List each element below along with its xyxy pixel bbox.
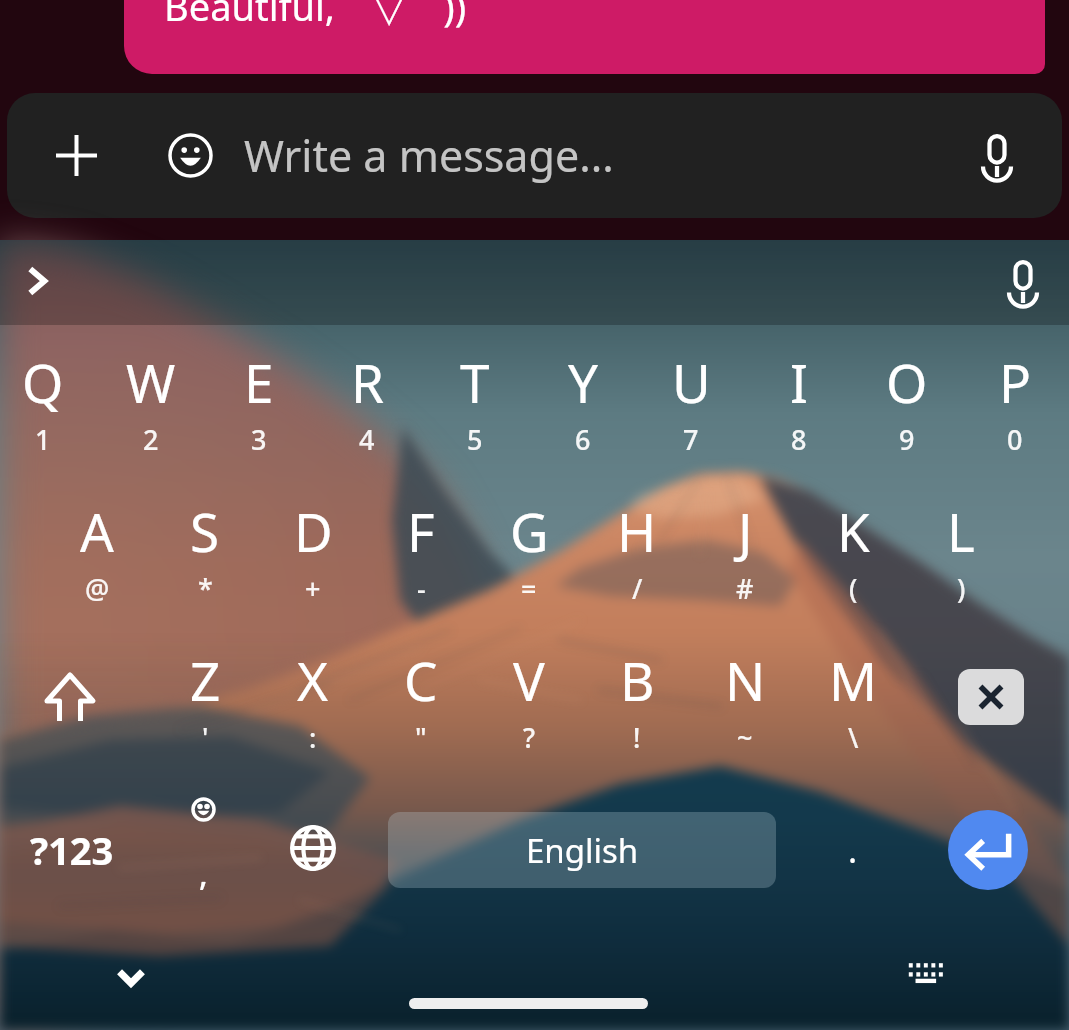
button[interactable]: T	[422, 344, 528, 484]
staticText: 5	[467, 421, 483, 458]
staticText: :	[309, 719, 317, 756]
staticText: P	[999, 346, 1032, 418]
staticText: 6	[575, 421, 591, 458]
staticText: 0	[1007, 421, 1023, 458]
button[interactable]: Backspace	[938, 642, 1044, 752]
button[interactable]: .	[800, 800, 906, 900]
staticText: D	[294, 495, 333, 567]
staticText: Q	[22, 346, 64, 418]
staticText: ?123	[30, 824, 114, 876]
button[interactable]: Shift	[17, 642, 123, 752]
button[interactable]: ?123	[10, 800, 134, 900]
button[interactable]: Voice input	[993, 252, 1053, 312]
staticText: 9	[899, 421, 915, 458]
button[interactable]: X	[260, 642, 366, 782]
button[interactable]: N	[692, 642, 798, 782]
staticText: G	[510, 495, 549, 567]
button[interactable]: P	[962, 344, 1068, 484]
staticText: O	[886, 346, 928, 418]
staticText: N	[725, 644, 766, 716]
staticText: 8	[791, 421, 807, 458]
button[interactable]: Expand suggestions	[8, 253, 64, 309]
staticText: Write a message...	[244, 126, 614, 185]
staticText: (	[849, 570, 858, 607]
staticText: X	[297, 644, 329, 716]
button[interactable]: G	[476, 493, 582, 633]
staticText: 3	[251, 421, 267, 458]
button[interactable]: Emoji keyboard	[150, 790, 256, 910]
staticText: I	[790, 346, 808, 418]
staticText: .	[848, 827, 858, 873]
staticText: ?	[523, 719, 536, 756]
button[interactable]: S	[152, 493, 258, 633]
button[interactable]: D	[260, 493, 366, 633]
staticText: K	[837, 495, 870, 567]
button[interactable]: F	[368, 493, 474, 633]
staticText: T	[460, 346, 490, 418]
staticText: )	[957, 570, 966, 607]
button[interactable]: R	[314, 344, 420, 484]
button[interactable]: E	[206, 344, 312, 484]
staticText: S	[190, 495, 220, 567]
staticText: "	[415, 719, 427, 756]
staticText: L	[947, 495, 975, 567]
staticText: Z	[190, 644, 221, 716]
staticText: Beautiful, ▽ ))	[164, 0, 467, 32]
button[interactable]: Emoji	[160, 125, 220, 185]
button[interactable]: I	[746, 344, 852, 484]
staticText: U	[672, 346, 711, 418]
staticText: #	[736, 570, 754, 607]
button[interactable]: Enter	[948, 810, 1028, 890]
button[interactable]: Add attachment	[40, 119, 112, 191]
button[interactable]: Beautiful, ▽ ))	[124, 0, 1045, 74]
button[interactable]: O	[854, 344, 960, 484]
button[interactable]: K	[800, 493, 906, 633]
staticText: /	[632, 570, 643, 607]
button[interactable]: Add attachment	[7, 93, 1062, 218]
button[interactable]: H	[584, 493, 690, 633]
button[interactable]: Change language	[260, 798, 366, 898]
staticText: =	[521, 570, 537, 607]
staticText: !	[633, 719, 641, 756]
button[interactable]: M	[800, 642, 906, 782]
staticText: B	[620, 644, 655, 716]
button[interactable]: Z	[152, 642, 258, 782]
staticText: 7	[683, 421, 699, 458]
staticText: '	[202, 719, 209, 756]
staticText: R	[351, 346, 384, 418]
staticText: 2	[143, 421, 159, 458]
button[interactable]: Q	[0, 344, 96, 484]
button[interactable]: English	[388, 812, 776, 888]
staticText: 1	[35, 421, 51, 458]
button[interactable]: Hide keyboard	[105, 951, 157, 1003]
staticText: A	[80, 495, 114, 567]
staticText: *	[198, 570, 213, 607]
button[interactable]: U	[638, 344, 744, 484]
staticText: W	[126, 346, 176, 418]
staticText: F	[407, 495, 435, 567]
staticText: English	[526, 828, 639, 873]
button[interactable]: V	[476, 642, 582, 782]
staticText: E	[244, 346, 274, 418]
staticText: 4	[359, 421, 375, 458]
staticText: J	[738, 495, 753, 567]
button[interactable]: L	[908, 493, 1014, 633]
button[interactable]: Switch keyboard	[900, 950, 952, 1002]
staticText: V	[513, 644, 545, 716]
button[interactable]: C	[368, 642, 474, 782]
button[interactable]: B	[584, 642, 690, 782]
staticText: \	[848, 719, 859, 756]
staticText: ~	[737, 719, 753, 756]
staticText: Y	[568, 346, 598, 418]
staticText: +	[305, 570, 321, 607]
button[interactable]: A	[44, 493, 150, 633]
staticText: C	[404, 644, 438, 716]
button[interactable]: W	[98, 344, 204, 484]
staticText: H	[617, 495, 657, 567]
button[interactable]: Record voice message	[962, 121, 1032, 191]
button[interactable]: J	[692, 493, 798, 633]
staticText: @	[85, 570, 110, 607]
button[interactable]: Y	[530, 344, 636, 484]
staticText: ,	[199, 852, 208, 896]
staticText: M	[829, 644, 878, 716]
